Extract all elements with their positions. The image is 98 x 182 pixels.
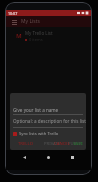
staticText: M [16,32,22,39]
staticText: My Lists [21,18,40,25]
button[interactable]: Open navigation drawer [10,17,19,26]
staticText: 0 items [29,37,43,42]
button[interactable]: SAVE [73,141,83,147]
staticText: Optional: a description for this list [13,118,86,124]
button[interactable]: CANCEL [54,141,70,147]
button[interactable]: Sync lists with Trello [13,131,59,137]
button[interactable]: Back [19,152,30,163]
staticText: Give your list a name [13,107,59,113]
button[interactable]: Home [43,152,54,163]
button[interactable]: M [6,27,91,44]
staticText: PUBLIC [68,141,83,147]
staticText: TRELLO [18,141,34,147]
button[interactable]: PRIVATE [44,141,61,147]
staticText: 10:07 [8,11,18,16]
staticText: Sync lists with Trello [19,131,59,137]
staticText: My Trello List [25,30,53,36]
button[interactable]: TRELLO [18,141,34,147]
button[interactable]: Recent apps [67,152,78,163]
staticText: CANCEL [54,141,70,147]
staticText: SAVE [73,141,83,147]
button[interactable]: PUBLIC [68,141,83,147]
staticText: PRIVATE [44,141,61,147]
